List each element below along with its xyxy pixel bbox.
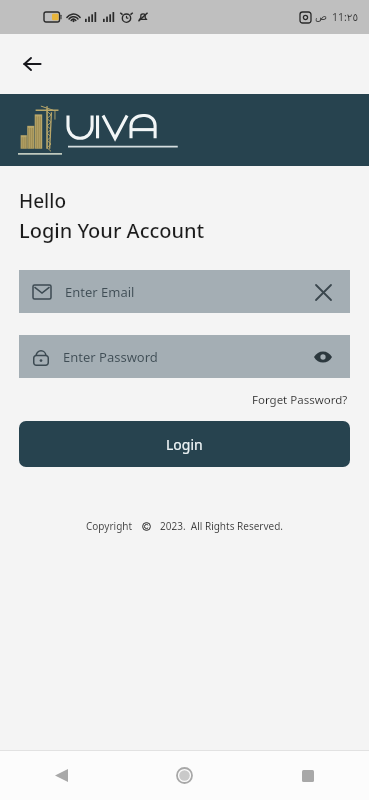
staticText: Login	[166, 435, 203, 454]
button[interactable]: Show password	[310, 344, 336, 370]
button[interactable]: Back	[0, 751, 123, 800]
button[interactable]: Clear email	[310, 279, 336, 305]
staticText: Enter Email	[65, 283, 135, 301]
staticText: Enter Password	[63, 348, 158, 366]
button[interactable]: Back	[14, 46, 50, 82]
button[interactable]: Enter Email	[19, 270, 350, 313]
button[interactable]: Recent apps	[246, 751, 369, 800]
staticText: Hello	[19, 188, 66, 214]
staticText: Forget Password?	[252, 392, 348, 408]
button[interactable]: Home	[123, 751, 246, 800]
staticText: 11:٢٥	[332, 10, 359, 24]
button[interactable]: Login	[19, 421, 350, 467]
button[interactable]: Forget Password?	[250, 390, 350, 410]
staticText: 2023. All Rights Reserved.	[160, 519, 284, 533]
staticText: Copyright	[86, 519, 133, 533]
staticText: Login Your Account	[19, 217, 205, 244]
button[interactable]: Enter Password	[19, 335, 350, 378]
staticText: ص	[315, 11, 328, 23]
